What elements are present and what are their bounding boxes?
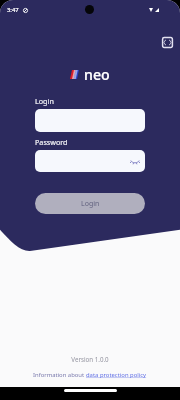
staticText: data protection policy [86, 371, 147, 379]
button[interactable]: Show password [35, 150, 145, 172]
button[interactable]: Show password [129, 155, 141, 167]
staticText: Login [81, 199, 100, 209]
staticText: Login [35, 96, 54, 106]
staticText: Password [35, 137, 68, 147]
staticText: 3:47 [7, 6, 19, 14]
button[interactable]: Login [35, 193, 145, 214]
button[interactable]: Developer options [162, 37, 173, 48]
button[interactable]: Information about [0, 371, 180, 379]
staticText: Version 1.0.0 [0, 355, 180, 363]
button[interactable] [35, 109, 145, 132]
staticText: neo [84, 65, 110, 84]
staticText: Information about [33, 371, 86, 379]
